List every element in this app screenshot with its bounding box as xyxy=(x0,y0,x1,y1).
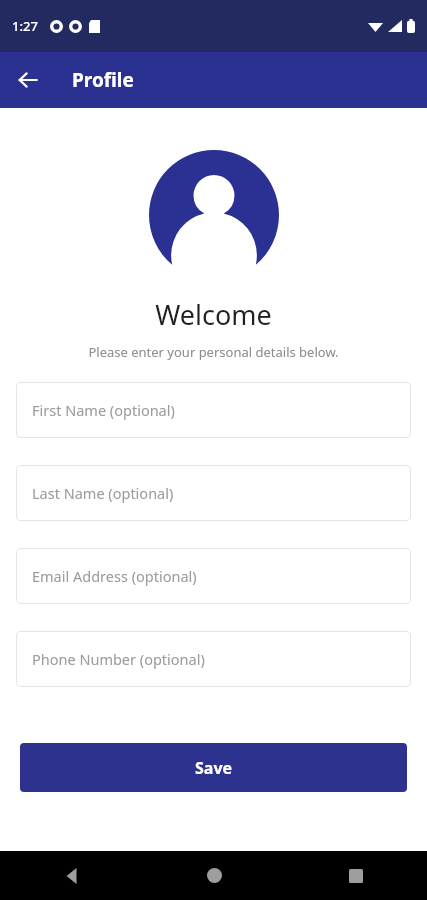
button[interactable]: Back xyxy=(0,851,143,900)
button[interactable]: Last Name (optional) xyxy=(16,465,411,521)
staticText: Phone Number (optional) xyxy=(32,649,205,669)
staticText: Profile xyxy=(72,67,134,93)
staticText: Last Name (optional) xyxy=(32,483,174,503)
button[interactable]: Home xyxy=(143,851,285,900)
button[interactable]: Phone Number (optional) xyxy=(16,631,411,687)
button[interactable]: Recent apps xyxy=(285,851,427,900)
staticText: Save xyxy=(195,757,233,779)
staticText: Welcome xyxy=(155,296,272,333)
button[interactable]: Back xyxy=(8,60,48,100)
button[interactable]: Email Address (optional) xyxy=(16,548,411,604)
staticText: Please enter your personal details below… xyxy=(88,343,339,361)
staticText: First Name (optional) xyxy=(32,400,175,420)
button[interactable]: First Name (optional) xyxy=(16,382,411,438)
staticText: 1:27 xyxy=(12,17,38,35)
staticText: Email Address (optional) xyxy=(32,566,197,586)
button[interactable]: Save xyxy=(20,743,407,792)
